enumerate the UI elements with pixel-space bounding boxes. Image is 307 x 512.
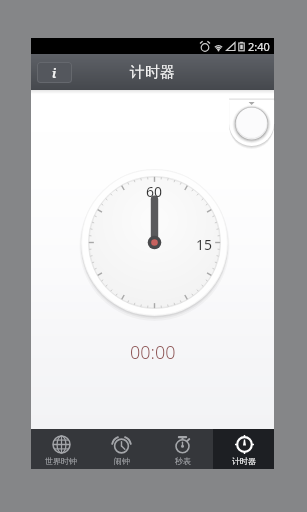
button[interactable]: 闹钟 [91,429,152,469]
staticText: 60 [146,182,163,201]
button[interactable]: 秒表 [152,429,213,469]
staticText: 15 [196,235,213,254]
button[interactable]: Info [37,62,72,83]
button[interactable]: Open timer picker [227,98,277,148]
staticText: 世界时钟 [45,456,77,466]
button[interactable]: 世界时钟 [31,429,91,469]
staticText: 2:40 [248,39,270,54]
staticText: 秒表 [175,456,191,466]
staticText: i [52,65,57,81]
staticText: 计时器 [232,456,256,466]
staticText: 00:00 [130,340,176,365]
button[interactable]: 计时器 [213,429,274,469]
staticText: 计时器 [130,63,175,82]
staticText: 闹钟 [114,456,130,466]
